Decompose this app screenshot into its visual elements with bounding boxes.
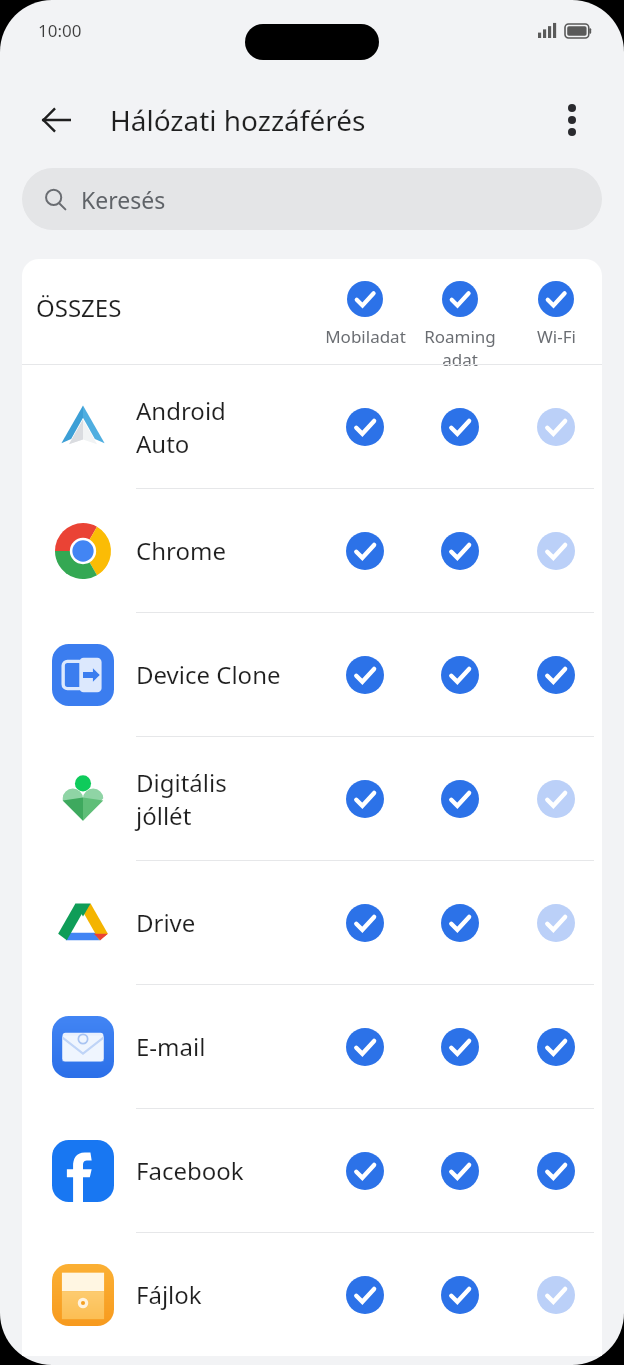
staticText: Roaming: [424, 325, 496, 348]
button[interactable]: Chrome: [22, 489, 602, 612]
staticText: Wi-Fi: [537, 325, 576, 348]
button[interactable]: Drive: [22, 861, 602, 984]
button[interactable]: [334, 489, 396, 612]
button[interactable]: Facebook: [22, 1109, 602, 1232]
button[interactable]: Digitális: [22, 737, 602, 860]
button[interactable]: [535, 278, 577, 320]
button[interactable]: ÖSSZES: [22, 259, 602, 364]
staticText: Chrome: [136, 534, 226, 567]
button[interactable]: [525, 489, 587, 612]
staticText: Device Clone: [136, 658, 281, 691]
staticText: Drive: [136, 906, 196, 939]
staticText: ÖSSZES: [36, 291, 122, 324]
staticText: Auto: [136, 427, 190, 460]
button[interactable]: More options: [544, 92, 600, 148]
button[interactable]: [334, 365, 396, 488]
button[interactable]: [334, 737, 396, 860]
staticText: E-mail: [136, 1030, 206, 1063]
button[interactable]: [429, 489, 491, 612]
button[interactable]: [429, 1233, 491, 1356]
staticText: Keresés: [81, 184, 166, 215]
button[interactable]: [525, 613, 587, 736]
button[interactable]: [344, 278, 386, 320]
button[interactable]: [525, 1109, 587, 1232]
button[interactable]: [525, 737, 587, 860]
button[interactable]: Device Clone: [22, 613, 602, 736]
staticText: Facebook: [136, 1154, 244, 1187]
button[interactable]: [525, 365, 587, 488]
button[interactable]: E-mail: [22, 985, 602, 1108]
button[interactable]: [525, 985, 587, 1108]
staticText: jóllét: [136, 799, 192, 832]
button[interactable]: Back: [26, 90, 86, 150]
button[interactable]: [334, 613, 396, 736]
staticText: 10:00: [38, 19, 82, 42]
staticText: Mobiladat: [325, 325, 406, 348]
staticText: Digitális: [136, 766, 227, 799]
button[interactable]: Fájlok: [22, 1233, 602, 1356]
button[interactable]: [334, 985, 396, 1108]
button[interactable]: [525, 1233, 587, 1356]
button[interactable]: [429, 613, 491, 736]
button[interactable]: [429, 365, 491, 488]
button[interactable]: [429, 985, 491, 1108]
button[interactable]: Keresés: [22, 168, 602, 230]
staticText: Fájlok: [136, 1278, 202, 1311]
button[interactable]: [334, 1109, 396, 1232]
staticText: adat: [442, 348, 478, 371]
button[interactable]: [334, 1233, 396, 1356]
button[interactable]: [429, 737, 491, 860]
button[interactable]: [429, 1109, 491, 1232]
staticText: Android: [136, 394, 226, 427]
button[interactable]: [525, 861, 587, 984]
button[interactable]: [439, 278, 481, 320]
button[interactable]: [429, 861, 491, 984]
button[interactable]: [334, 861, 396, 984]
button[interactable]: Android: [22, 365, 602, 488]
staticText: Hálózati hozzáférés: [110, 101, 366, 139]
